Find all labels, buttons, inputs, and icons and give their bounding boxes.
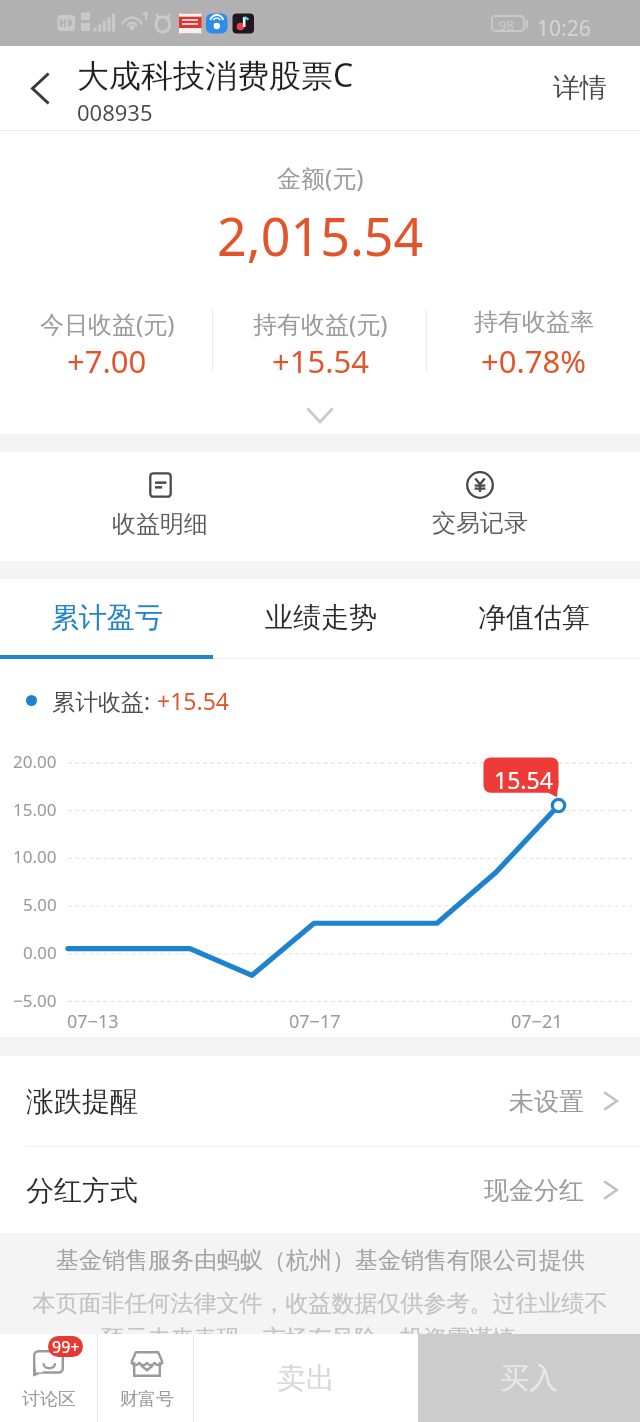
- button[interactable]: 分红方式: [0, 1147, 640, 1233]
- staticText: 今日收益(元): [40, 307, 175, 340]
- staticText: 07−17: [289, 1009, 341, 1034]
- button[interactable]: 业绩走势: [214, 579, 427, 655]
- staticText: 2,015.54: [217, 200, 424, 271]
- staticText: 持有收益率: [474, 307, 594, 337]
- staticText: 金额(元): [277, 161, 364, 194]
- staticText: 98: [499, 16, 514, 34]
- button[interactable]: 买入: [418, 1334, 640, 1422]
- staticText: 卖出: [277, 1360, 335, 1397]
- staticText: 详情: [553, 71, 607, 105]
- button[interactable]: 卖出: [194, 1334, 418, 1422]
- button[interactable]: 收益明细: [0, 452, 320, 561]
- staticText: 持有收益(元): [253, 307, 388, 340]
- staticText: 20.00: [13, 750, 57, 773]
- button[interactable]: 交易记录: [320, 452, 640, 561]
- staticText: 累计收益:: [52, 685, 157, 716]
- button[interactable]: 净值估算: [427, 579, 640, 655]
- staticText: 本页面非任何法律文件，收益数据仅供参考。过往业绩不预示未来表现，市场有风险，投资…: [30, 1289, 610, 1334]
- staticText: +7.00: [67, 340, 147, 382]
- button[interactable]: Expand: [0, 368, 640, 434]
- button[interactable]: 累计盈亏: [0, 579, 214, 655]
- staticText: 10.00: [13, 845, 57, 868]
- staticText: 现金分红: [484, 1175, 584, 1206]
- staticText: +15.54: [272, 340, 369, 382]
- staticText: 交易记录: [432, 508, 528, 538]
- staticText: 财富号: [120, 1388, 174, 1411]
- staticText: 讨论区: [22, 1388, 76, 1411]
- button[interactable]: 涨跌提醒: [0, 1056, 640, 1146]
- staticText: 收益明细: [112, 509, 208, 539]
- staticText: +0.78%: [481, 340, 586, 382]
- staticText: 10:26: [537, 14, 591, 43]
- staticText: 15.54: [494, 764, 553, 795]
- staticText: 07−13: [67, 1009, 119, 1034]
- button[interactable]: 详情: [527, 46, 640, 130]
- staticText: 大成科技消费股票C: [77, 53, 354, 97]
- staticText: 008935: [77, 97, 153, 127]
- staticText: 15.00: [13, 798, 57, 821]
- staticText: 净值估算: [478, 600, 590, 635]
- staticText: 买入: [500, 1360, 558, 1397]
- staticText: 累计盈亏: [51, 600, 163, 635]
- staticText: 5.00: [23, 893, 57, 916]
- staticText: 99+: [52, 1336, 80, 1357]
- staticText: −5.00: [13, 989, 57, 1012]
- staticText: 涨跌提醒: [26, 1084, 138, 1119]
- staticText: 0.00: [23, 941, 57, 964]
- button[interactable]: Back: [0, 46, 66, 130]
- button[interactable]: 讨论区: [0, 1334, 97, 1422]
- button[interactable]: 财富号: [98, 1334, 193, 1422]
- staticText: 分红方式: [26, 1173, 138, 1208]
- staticText: 基金销售服务由蚂蚁（杭州）基金销售有限公司提供: [56, 1246, 585, 1275]
- staticText: 业绩走势: [265, 600, 377, 635]
- staticText: 07−21: [511, 1009, 563, 1034]
- staticText: 未设置: [509, 1086, 584, 1117]
- staticText: +15.54: [157, 685, 229, 716]
